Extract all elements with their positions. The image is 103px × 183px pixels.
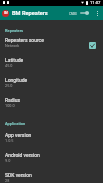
button[interactable]: Radius <box>0 97 103 117</box>
staticText: 100.0 <box>5 103 15 107</box>
staticText: Android version <box>5 152 40 158</box>
button[interactable]: SDK version <box>0 172 103 183</box>
button[interactable]: Android version <box>0 152 103 172</box>
button[interactable]: App version <box>0 132 103 152</box>
staticText: 25.0 <box>5 83 13 87</box>
button[interactable]: CMSS toggle <box>80 10 89 16</box>
staticText: Application <box>5 121 26 126</box>
button[interactable]: Latitude <box>0 57 103 77</box>
staticText: SDK version <box>5 172 32 178</box>
staticText: 1.0.5 <box>5 138 14 142</box>
staticText: Repeaters source <box>5 37 44 43</box>
staticText: 11:07 <box>90 0 101 5</box>
staticText: App version <box>5 132 32 138</box>
staticText: BM Repeaters <box>12 10 48 17</box>
staticText: BM <box>4 12 8 15</box>
staticText: Radius <box>5 97 21 103</box>
staticText: 28 <box>5 178 10 182</box>
staticText: CMSS <box>69 12 77 15</box>
staticText: Repeaters <box>5 28 24 33</box>
button[interactable]: App logo <box>2 10 9 17</box>
staticText: Network <box>5 43 20 47</box>
staticText: Latitude <box>5 57 24 63</box>
staticText: Longitude <box>5 77 28 83</box>
button[interactable]: Longitude <box>0 77 103 97</box>
staticText: 9.0 <box>5 158 11 162</box>
button[interactable]: More options <box>96 11 99 16</box>
staticText: 45.0 <box>5 63 13 67</box>
button[interactable]: Repeaters source <box>0 37 103 57</box>
